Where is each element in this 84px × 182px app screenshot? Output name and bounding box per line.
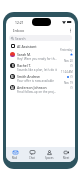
button[interactable]: Star — [70, 64, 73, 67]
button[interactable]: Chat — [24, 147, 40, 162]
button[interactable]: Search — [9, 35, 72, 41]
staticText: Inbox — [13, 28, 25, 34]
staticText: Nov 20 — [64, 59, 73, 63]
staticText: AJ — [11, 86, 14, 90]
staticText: Mail — [12, 156, 18, 160]
button[interactable]: Sarah M. — [6, 47, 75, 58]
button[interactable]: M — [6, 69, 75, 80]
button[interactable]: R — [6, 58, 75, 69]
staticText: Smith Andrew — [17, 74, 40, 79]
staticText: R — [12, 64, 14, 68]
button[interactable]: Spaces — [41, 147, 57, 162]
staticText: Sarah M. — [17, 52, 32, 57]
button[interactable]: Meet — [58, 147, 74, 162]
staticText: Search — [15, 36, 26, 40]
button[interactable]: Star — [70, 75, 73, 78]
staticText: Spaces — [45, 156, 54, 160]
button[interactable]: More options — [67, 27, 74, 34]
button[interactable]: Mail — [7, 147, 23, 162]
staticText: AI Assistant — [17, 44, 37, 49]
staticText: Hey! Were you ready for the meeting to — [17, 57, 57, 61]
staticText: Final follow-up on the project — [17, 90, 57, 94]
staticText: Yesterday — [60, 48, 73, 52]
staticText: Rachel T. — [17, 63, 32, 68]
staticText: Your offer is now available — [17, 79, 54, 83]
staticText: Anderson Johnson — [17, 85, 47, 90]
staticText: Meet — [63, 156, 70, 160]
staticText: M — [11, 75, 14, 79]
button[interactable]: AJ — [6, 80, 75, 91]
button[interactable]: Star — [70, 53, 73, 56]
button[interactable]: Star — [70, 86, 73, 89]
staticText: Nov 19 — [64, 81, 73, 85]
staticText: Chat — [29, 156, 35, 160]
button[interactable]: AI Assistant — [6, 43, 75, 49]
staticText: Sounds like a plan, let's do it — [17, 68, 57, 72]
staticText: 11:24 AM — [61, 70, 73, 74]
staticText: 12:21 — [15, 20, 24, 24]
